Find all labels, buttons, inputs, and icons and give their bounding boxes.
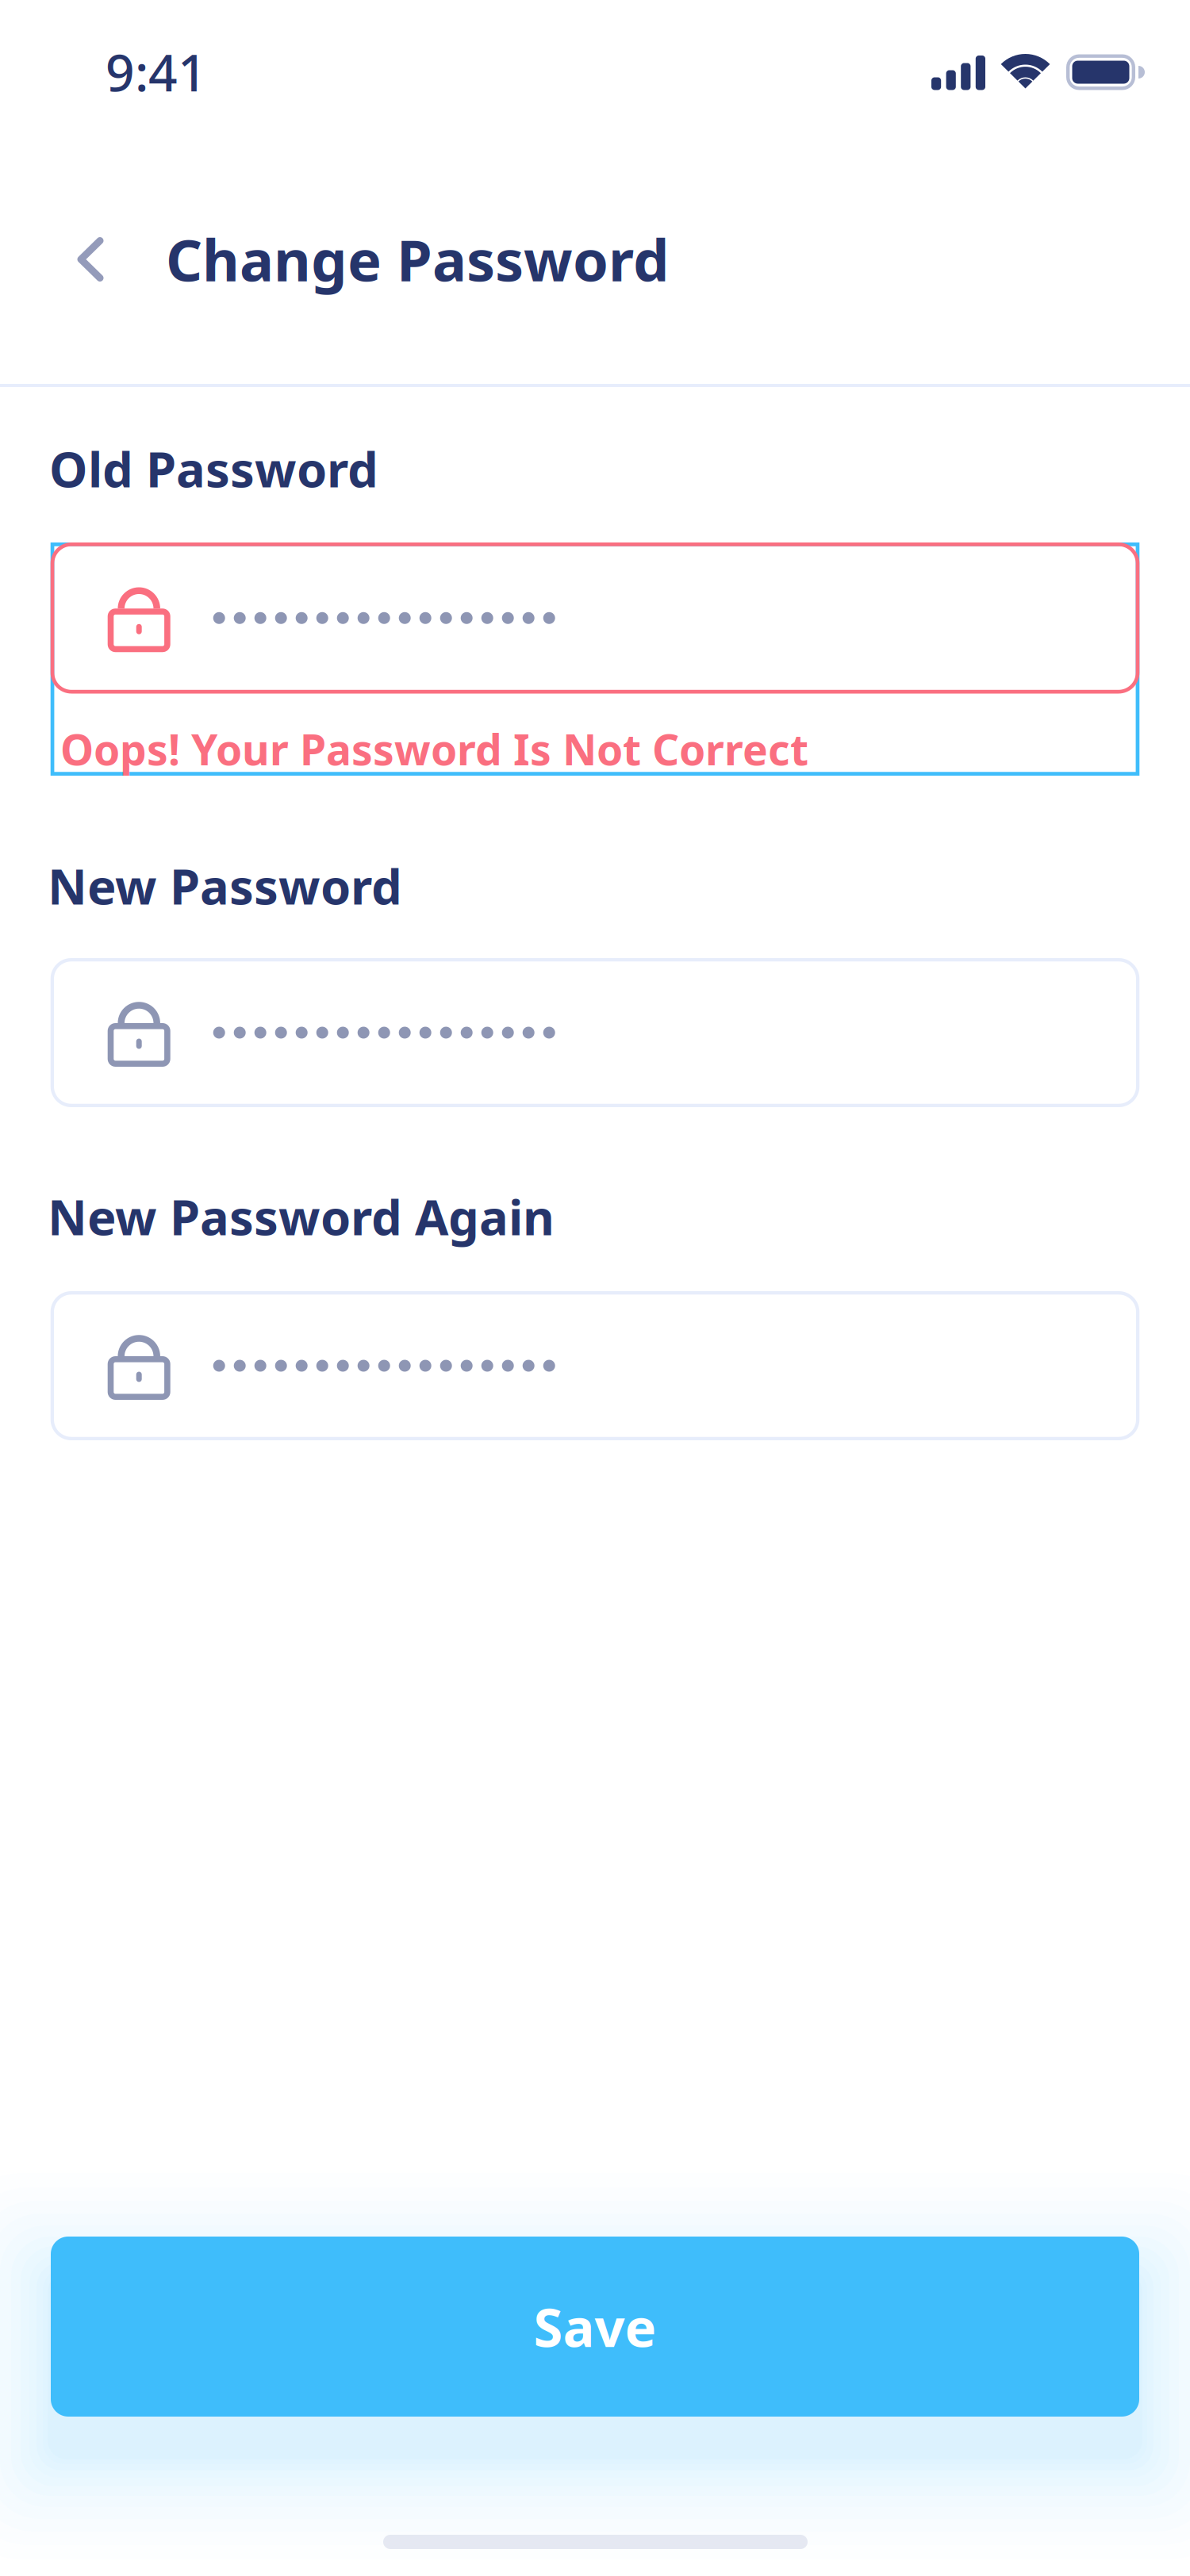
staticText: Old Password bbox=[49, 436, 378, 501]
staticText: Oops! Your Password Is Not Correct bbox=[60, 721, 808, 777]
staticText: Change Password bbox=[166, 221, 670, 297]
staticText: New Password Again bbox=[48, 1184, 555, 1249]
button[interactable]: Back bbox=[48, 216, 132, 303]
staticText: 9:41 bbox=[106, 38, 207, 105]
staticText: Save bbox=[534, 2291, 656, 2362]
staticText: New Password bbox=[48, 853, 402, 918]
button[interactable]: Save bbox=[51, 2237, 1139, 2417]
